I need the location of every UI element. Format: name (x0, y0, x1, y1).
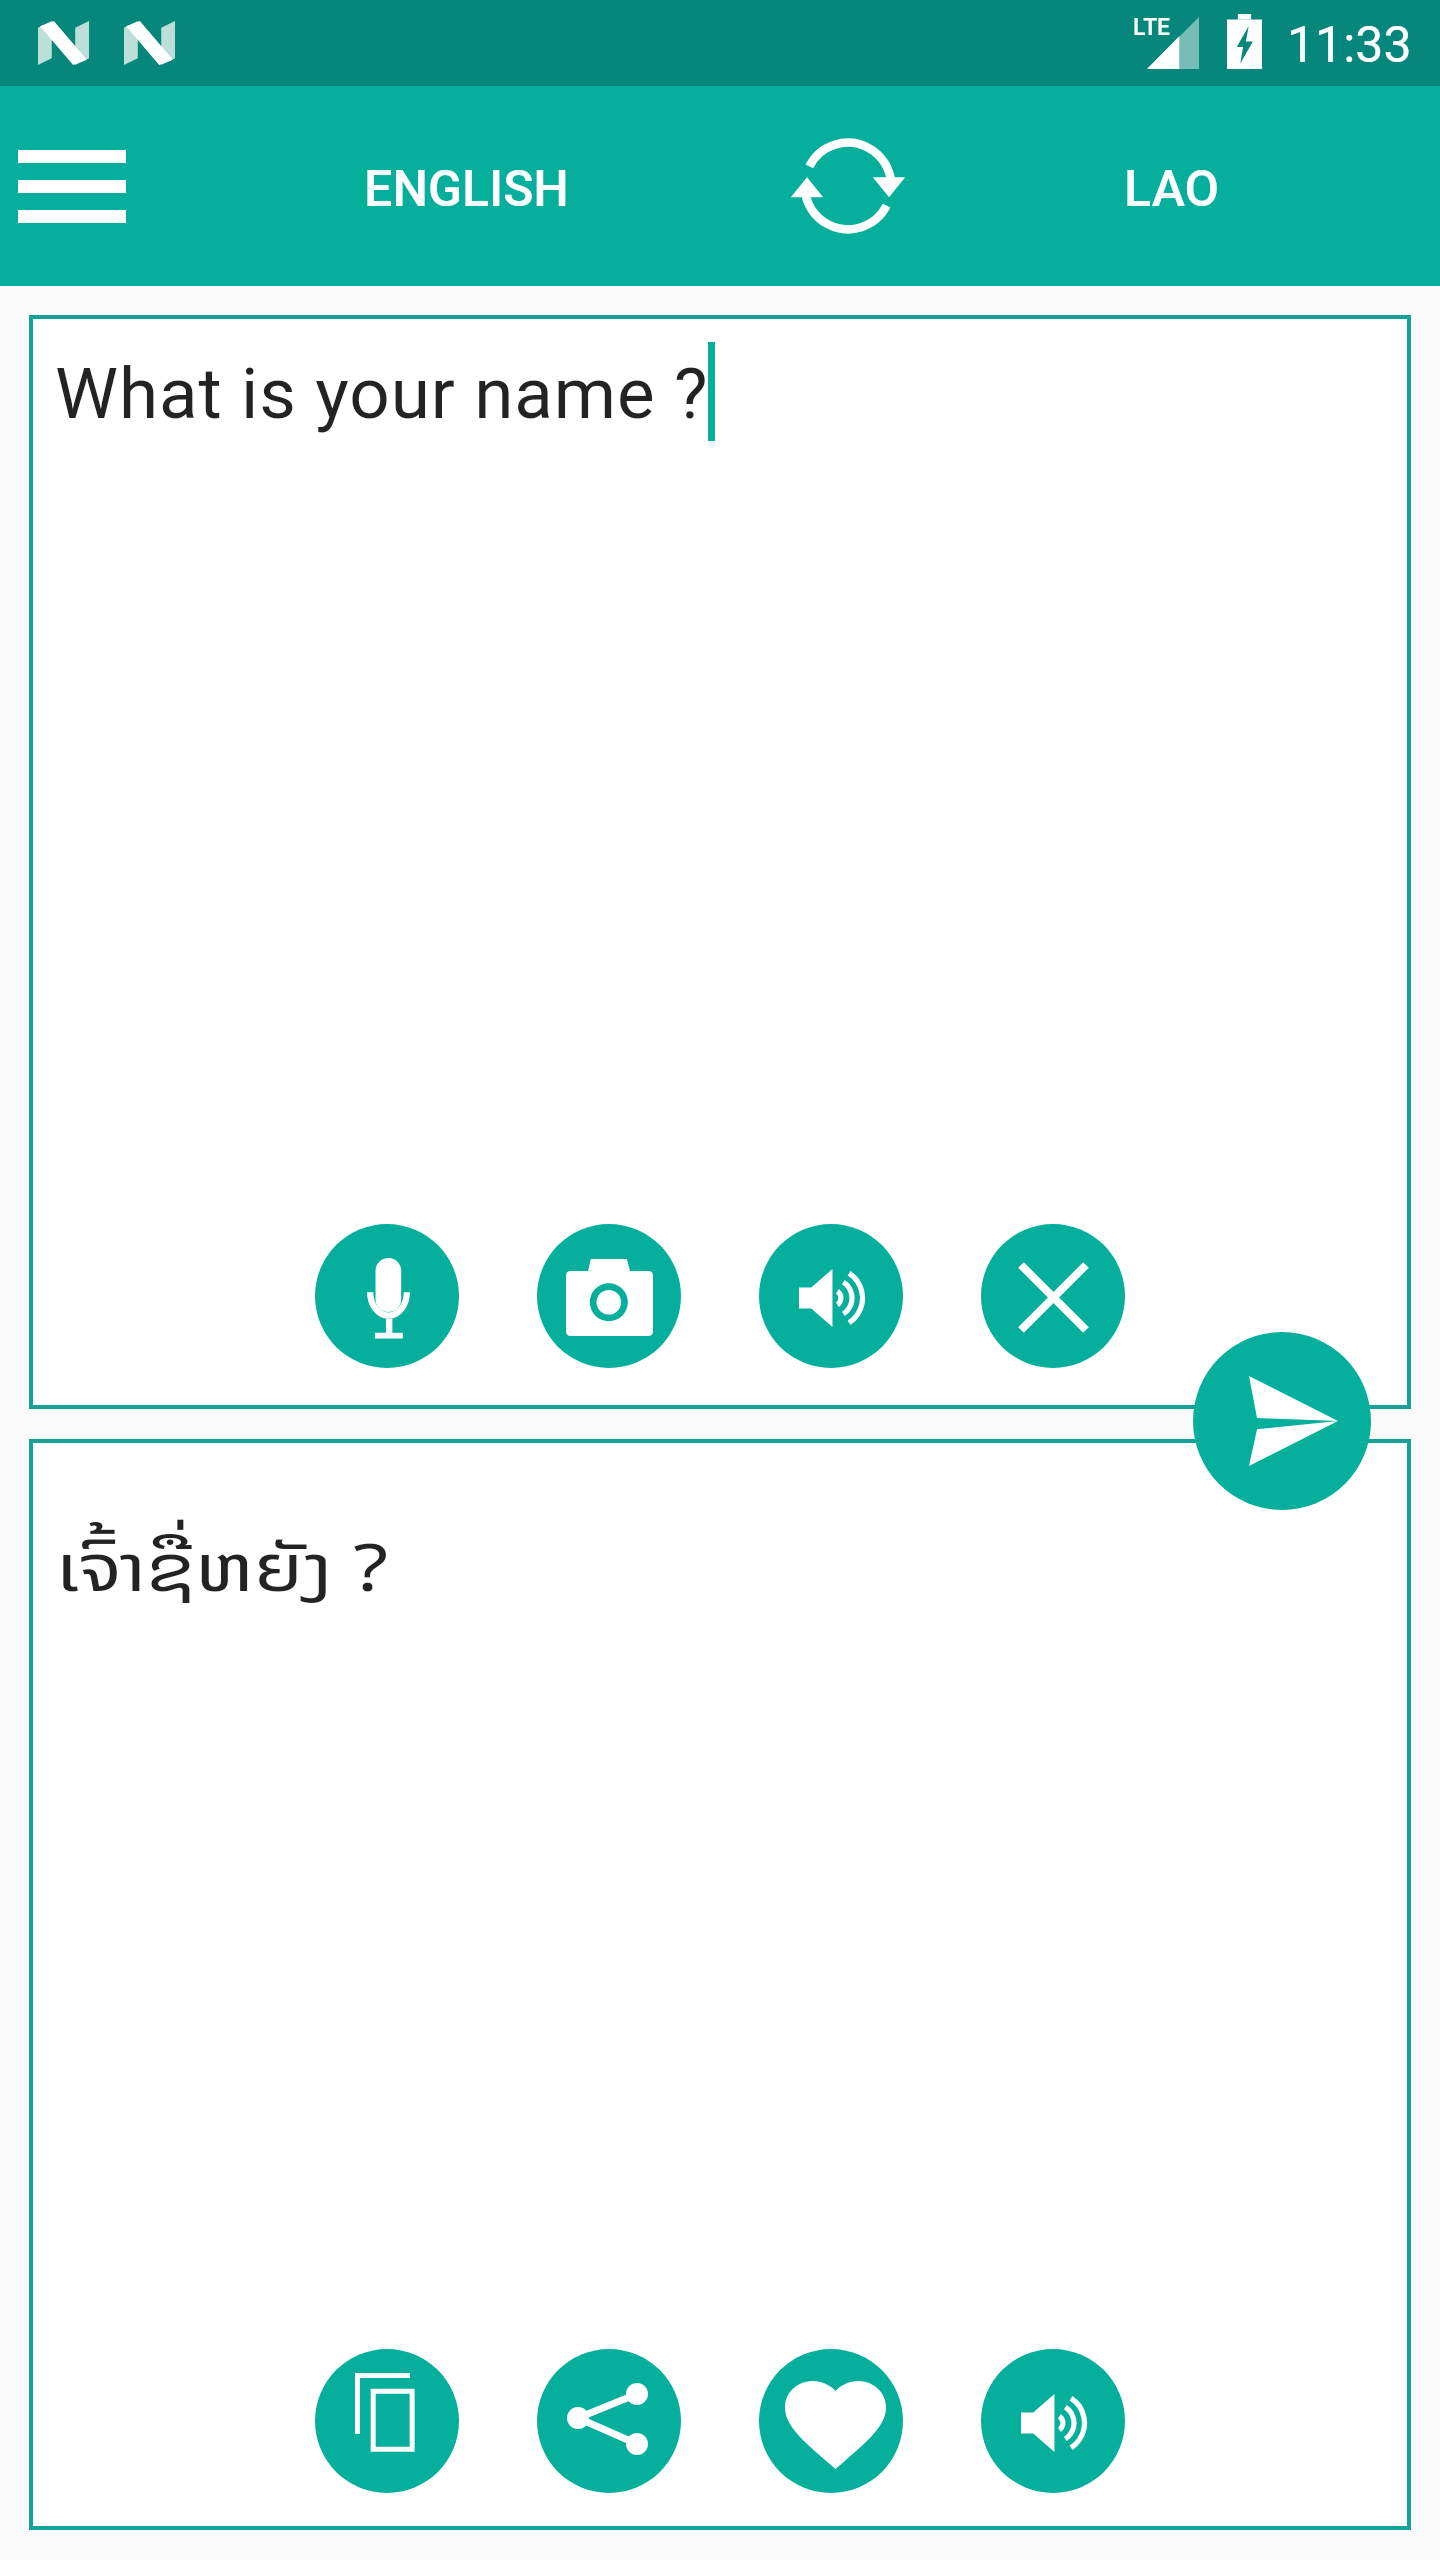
staticText: LAO (1124, 160, 1219, 219)
button[interactable]: Listen (759, 1224, 903, 1368)
button[interactable]: LAO (986, 89, 1356, 289)
button[interactable]: ENGLISH (281, 89, 651, 289)
button[interactable]: Translate (1193, 1332, 1371, 1510)
button[interactable]: Copy (315, 2349, 459, 2493)
staticText: ENGLISH (364, 160, 569, 219)
button[interactable]: Favourite (759, 2349, 903, 2493)
staticText: What is your name ? (55, 352, 709, 435)
staticText: LTE (1133, 14, 1171, 41)
button[interactable]: Swap languages (768, 86, 928, 286)
button[interactable]: Voice input (315, 1224, 459, 1368)
button[interactable]: Share (537, 2349, 681, 2493)
button[interactable]: Listen (981, 2349, 1125, 2493)
staticText: ເຈົ້າຊື່ຫຍັງ ? (57, 1513, 389, 1622)
button[interactable]: Open navigation menu (0, 86, 144, 286)
button[interactable]: Clear text (981, 1224, 1125, 1368)
staticText: 11:33 (1287, 16, 1412, 75)
button[interactable]: Camera input (537, 1224, 681, 1368)
